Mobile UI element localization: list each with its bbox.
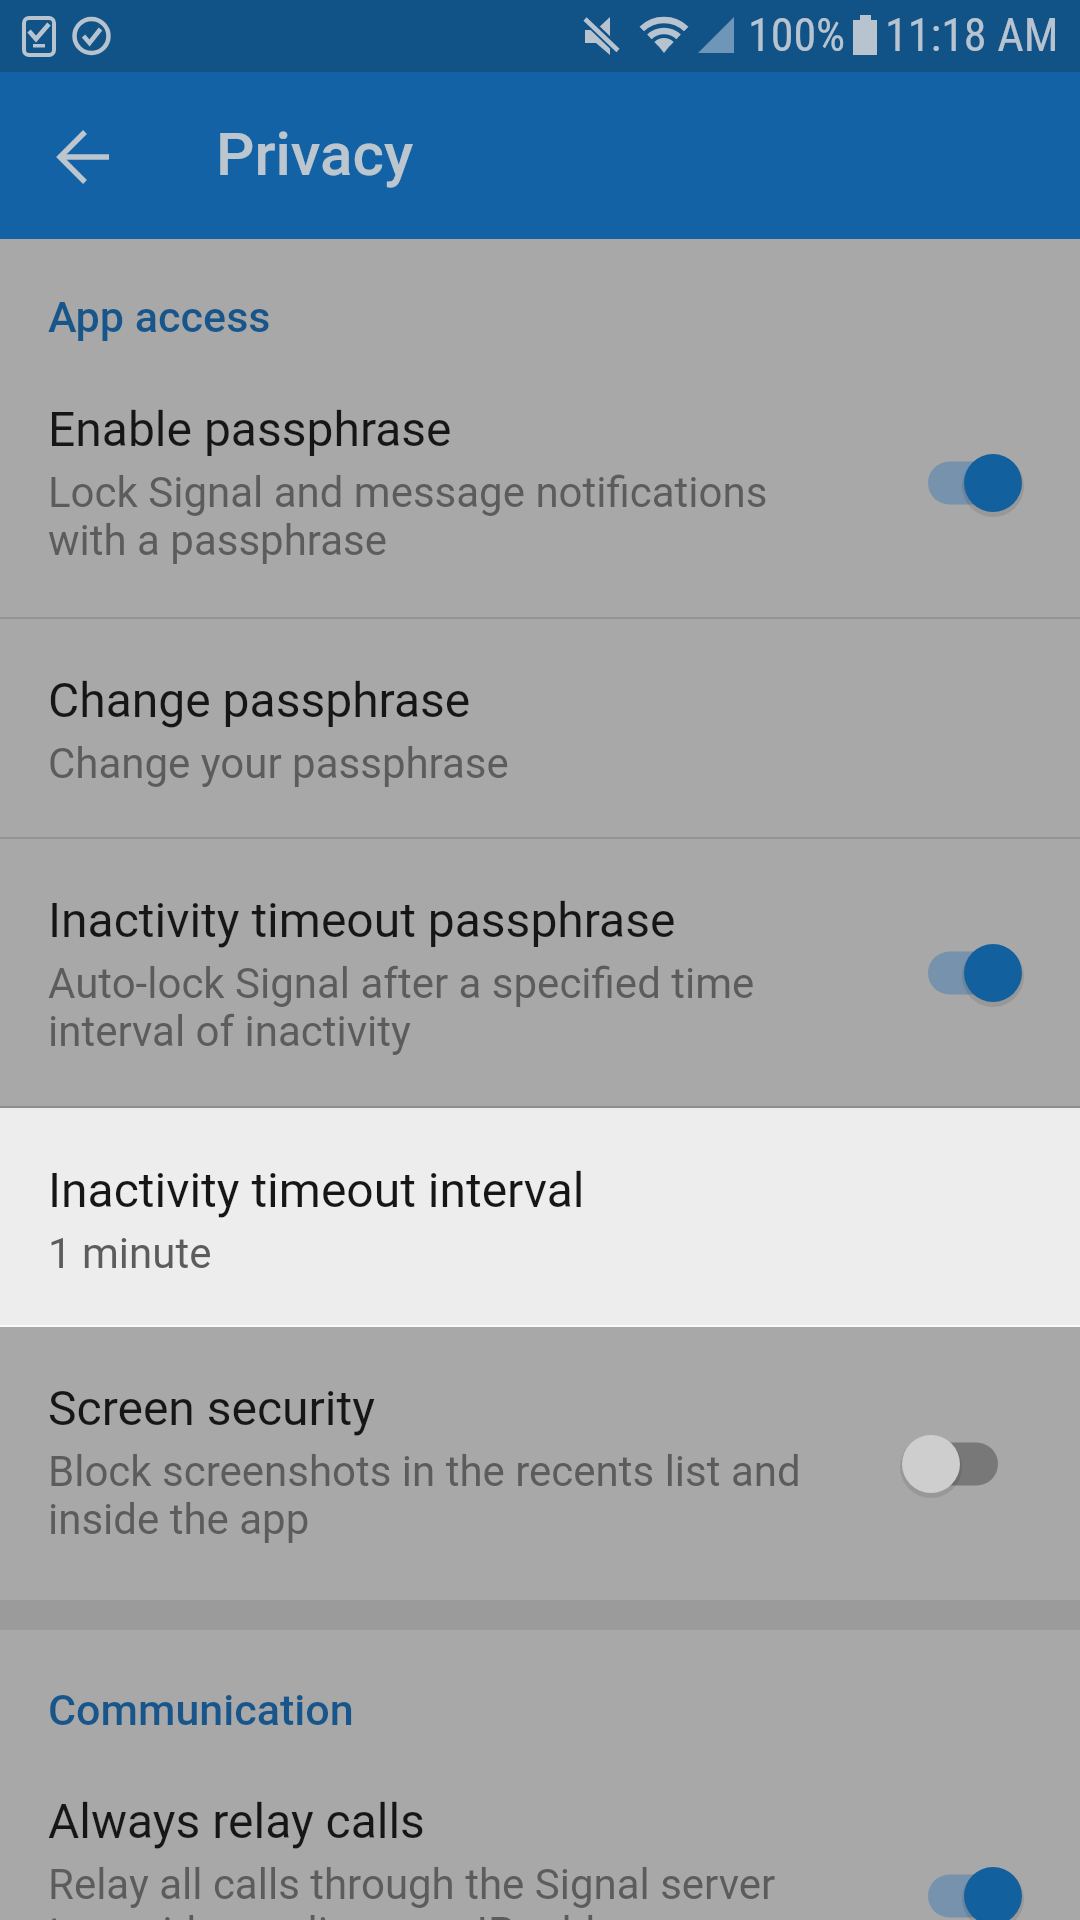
staticText: Inactivity timeout interval [48,1162,585,1218]
staticText: 1 minute [48,1229,212,1278]
button[interactable]: Switch on [893,433,1009,533]
button[interactable]: Switch off [893,1414,1009,1514]
button[interactable]: Navigate up [24,106,124,206]
button[interactable]: Switch on [893,923,1009,1023]
staticText: Change your passphrase [48,739,509,788]
staticText: Change passphrase [48,672,471,728]
button[interactable]: Inactivity timeout interval [0,1106,1080,1327]
staticText: Auto-lock Signal after a specified time … [48,959,755,1056]
staticText: Communication [48,1685,354,1735]
button[interactable]: Inactivity timeout passphrase [0,839,1080,1106]
staticText: App access [48,292,271,342]
staticText: Privacy [216,119,414,189]
button[interactable]: Change passphrase [0,619,1080,837]
staticText: 11:18 AM [885,8,1059,62]
staticText: Relay all calls through the Signal serve… [48,1860,776,1920]
staticText: Screen security [48,1380,375,1436]
staticText: Block screenshots in the recents list an… [48,1447,801,1544]
staticText: Lock Signal and message notifications wi… [48,468,768,565]
button[interactable]: Switch on [893,1846,1009,1920]
staticText: Enable passphrase [48,401,452,457]
button[interactable]: Screen security [0,1327,1080,1600]
staticText: 100% [748,8,846,62]
staticText: Inactivity timeout passphrase [48,892,676,948]
button[interactable]: Always relay calls [0,1740,1080,1920]
staticText: Always relay calls [48,1793,425,1849]
button[interactable]: Enable passphrase [0,348,1080,617]
